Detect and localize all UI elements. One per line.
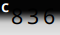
button[interactable]: 8 <box>9 7 25 25</box>
staticText: 3 <box>27 2 39 30</box>
button[interactable]: 6 <box>41 7 57 25</box>
button[interactable]: 3 <box>25 7 41 25</box>
staticText: 8 <box>11 2 23 30</box>
button[interactable]: Home <box>0 0 11 12</box>
staticText: c <box>1 0 9 17</box>
staticText: 6 <box>43 2 55 30</box>
